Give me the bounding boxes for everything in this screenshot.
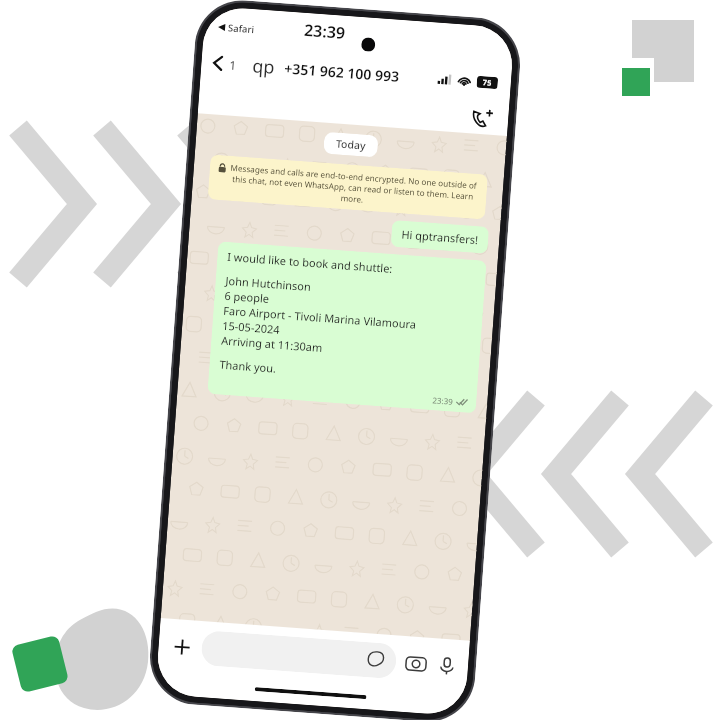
staticText: John Hutchinson	[225, 273, 312, 294]
staticText: Thank you.	[219, 357, 277, 376]
staticText: Arriving at 11:30am	[221, 333, 323, 355]
button[interactable]: Hi qptransfers!	[390, 220, 489, 254]
staticText: Today	[335, 136, 366, 153]
staticText: Faro Airport - Tivoli Marina Vilamoura	[223, 303, 417, 332]
staticText: I would like to book and shuttle:	[227, 249, 393, 276]
staticText: qp	[251, 53, 276, 80]
button[interactable]: I would like to book and shuttle:	[207, 241, 487, 413]
button[interactable]: Stickers	[368, 651, 386, 669]
staticText: 23:39	[303, 19, 347, 44]
button[interactable]: Back	[211, 50, 401, 89]
staticText: 6 people	[224, 288, 270, 306]
staticText: Hi qptransfers!	[401, 226, 479, 247]
staticText: 23:39	[432, 394, 454, 407]
button[interactable]: Attach	[169, 634, 194, 659]
button[interactable]: Today	[323, 132, 379, 157]
button[interactable]: Stickers	[200, 630, 397, 679]
button[interactable]: Add call	[470, 106, 494, 130]
staticText: 1	[229, 56, 237, 73]
staticText: Messages and calls are end-to-end encryp…	[227, 162, 479, 213]
button[interactable]: Camera	[405, 653, 427, 674]
staticText: 15-05-2024	[222, 318, 281, 337]
button[interactable]: Messages and calls are end-to-end encryp…	[207, 154, 488, 219]
button[interactable]: Voice message	[436, 655, 458, 677]
staticText: Safari	[228, 21, 255, 36]
staticText: 75	[482, 77, 492, 88]
staticText: +351 962 100 993	[284, 58, 401, 86]
